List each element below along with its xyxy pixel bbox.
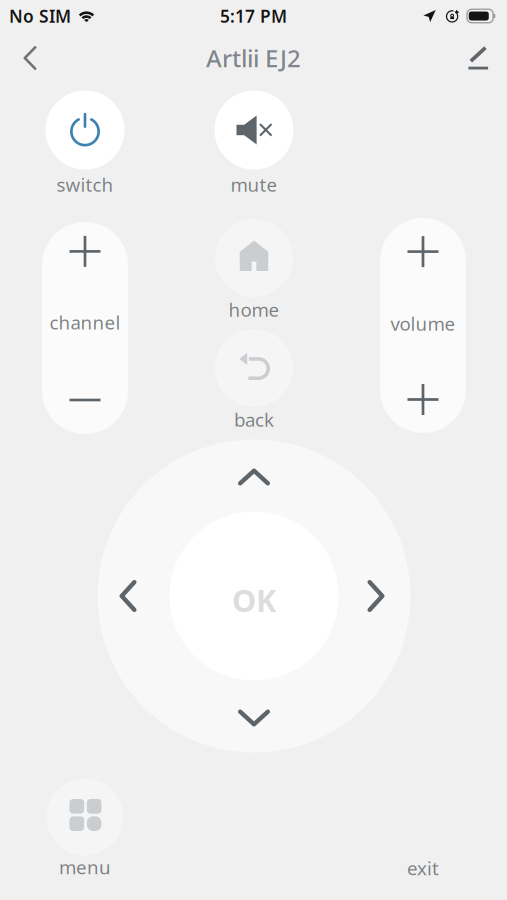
- button[interactable]: mute: [214, 90, 293, 192]
- staticText: No SIM: [9, 4, 71, 27]
- staticText: home: [228, 297, 279, 322]
- staticText: mute: [230, 172, 277, 197]
- staticText: menu: [59, 855, 111, 879]
- button[interactable]: Back: [8, 36, 52, 80]
- button[interactable]: Edit: [456, 36, 500, 80]
- staticText: volume: [390, 311, 455, 336]
- button[interactable]: Right: [350, 570, 402, 622]
- button[interactable]: Up: [228, 451, 280, 503]
- staticText: exit: [407, 856, 439, 880]
- staticText: 5:17 PM: [220, 4, 287, 27]
- button[interactable]: switch: [45, 90, 124, 192]
- staticText: switch: [56, 172, 113, 197]
- button[interactable]: channel: [42, 222, 128, 434]
- button[interactable]: back: [215, 329, 293, 427]
- button[interactable]: menu: [46, 778, 123, 874]
- button[interactable]: home: [215, 219, 293, 317]
- staticText: Artlii EJ2: [206, 42, 301, 74]
- button[interactable]: OK: [169, 511, 338, 680]
- button[interactable]: Left: [102, 570, 154, 622]
- button[interactable]: exit: [387, 849, 459, 887]
- button[interactable]: Down: [228, 692, 280, 744]
- button[interactable]: volume: [380, 218, 466, 433]
- staticText: channel: [49, 310, 120, 335]
- staticText: back: [234, 407, 274, 432]
- staticText: OK: [232, 580, 276, 620]
